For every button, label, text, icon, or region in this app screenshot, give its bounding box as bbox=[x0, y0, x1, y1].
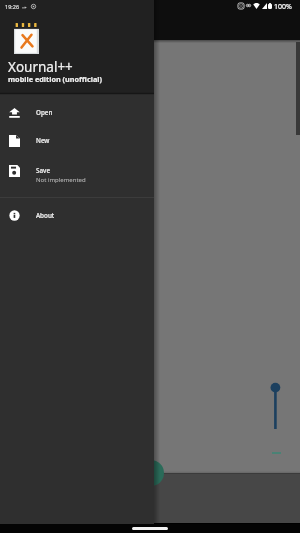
staticText: Not implemented bbox=[36, 176, 86, 184]
staticText: Open bbox=[36, 108, 53, 117]
staticText: 19:26 bbox=[5, 3, 20, 10]
button[interactable]: Page position marker bbox=[268, 380, 283, 432]
staticText: About bbox=[36, 211, 55, 220]
button[interactable]: New bbox=[0, 127, 154, 155]
staticText: mobile edition (unofficial) bbox=[8, 74, 102, 84]
staticText: Save bbox=[36, 166, 50, 175]
button[interactable]: Save bbox=[0, 158, 154, 194]
button[interactable]: About bbox=[0, 202, 154, 230]
button[interactable]: New document bbox=[138, 460, 164, 486]
staticText: Xournal++ bbox=[8, 58, 73, 76]
staticText: 100% bbox=[274, 2, 292, 9]
button[interactable]: Close navigation drawer bbox=[0, 40, 300, 473]
button[interactable]: Open bbox=[0, 99, 154, 127]
staticText: New bbox=[36, 136, 50, 145]
